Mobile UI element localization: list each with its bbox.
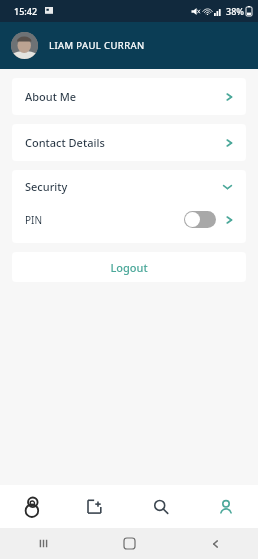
button[interactable]: Home <box>86 528 172 559</box>
button[interactable]: Toggle PIN <box>184 211 216 228</box>
button[interactable]: Back <box>172 528 258 559</box>
button[interactable]: Add <box>64 485 128 528</box>
staticText: PIN <box>25 213 184 227</box>
staticText: About Me <box>25 89 225 104</box>
staticText: Contact Details <box>25 135 225 150</box>
button[interactable]: Home <box>0 485 64 528</box>
staticText: 15:42 <box>14 5 38 17</box>
staticText: LIAM PAUL CURRAN <box>49 39 145 52</box>
button[interactable]: Security <box>12 170 246 203</box>
button[interactable]: Profile <box>193 485 258 528</box>
button[interactable]: Recents <box>0 528 86 559</box>
button[interactable]: Contact Details <box>12 124 246 161</box>
button[interactable]: PIN <box>12 203 246 236</box>
button[interactable]: Profile photo <box>11 32 38 59</box>
button[interactable]: Search <box>128 485 193 528</box>
staticText: 38% <box>226 5 244 17</box>
button[interactable]: About Me <box>12 78 246 115</box>
staticText: Logout <box>110 260 148 275</box>
button[interactable]: Logout <box>12 252 246 282</box>
staticText: Security <box>25 179 221 194</box>
